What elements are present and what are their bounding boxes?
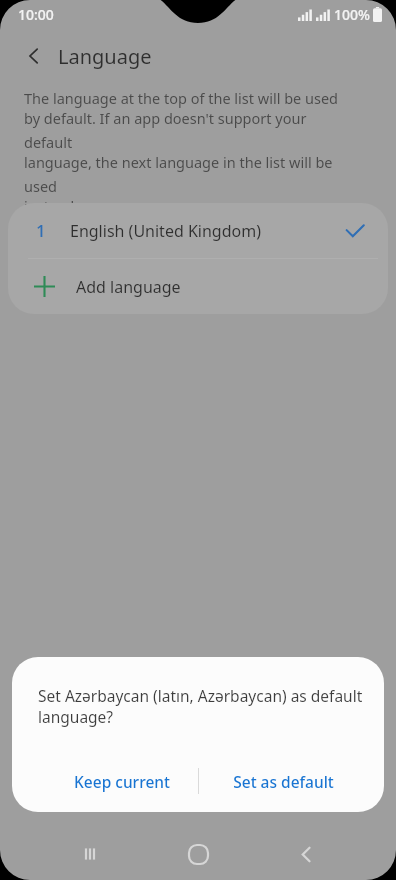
- button[interactable]: Back: [282, 830, 330, 878]
- staticText: English (United Kingdom): [70, 220, 261, 242]
- staticText: by default. If an app doesn't support yo…: [24, 108, 354, 152]
- staticText: The language at the top of the list will…: [24, 88, 339, 108]
- button[interactable]: Home: [174, 830, 222, 878]
- button[interactable]: Keep current: [46, 760, 198, 802]
- staticText: Set Azərbaycan (latın, Azərbaycan) as de…: [38, 685, 363, 706]
- staticText: 1: [36, 219, 46, 242]
- button[interactable]: Add language: [8, 259, 388, 314]
- button[interactable]: Recents: [66, 830, 114, 878]
- staticText: Set as default: [233, 771, 334, 792]
- staticText: Keep current: [74, 771, 170, 792]
- button[interactable]: Set as default: [202, 760, 364, 802]
- button[interactable]: 1: [8, 203, 388, 258]
- staticText: instead.: [24, 196, 78, 216]
- staticText: language?: [38, 706, 114, 727]
- staticText: Add language: [76, 276, 181, 298]
- staticText: Language: [58, 43, 152, 70]
- staticText: 10:00: [18, 5, 54, 24]
- button[interactable]: Back: [16, 38, 52, 74]
- staticText: language, the next language in the list …: [24, 152, 354, 196]
- staticText: 100%: [334, 5, 370, 24]
